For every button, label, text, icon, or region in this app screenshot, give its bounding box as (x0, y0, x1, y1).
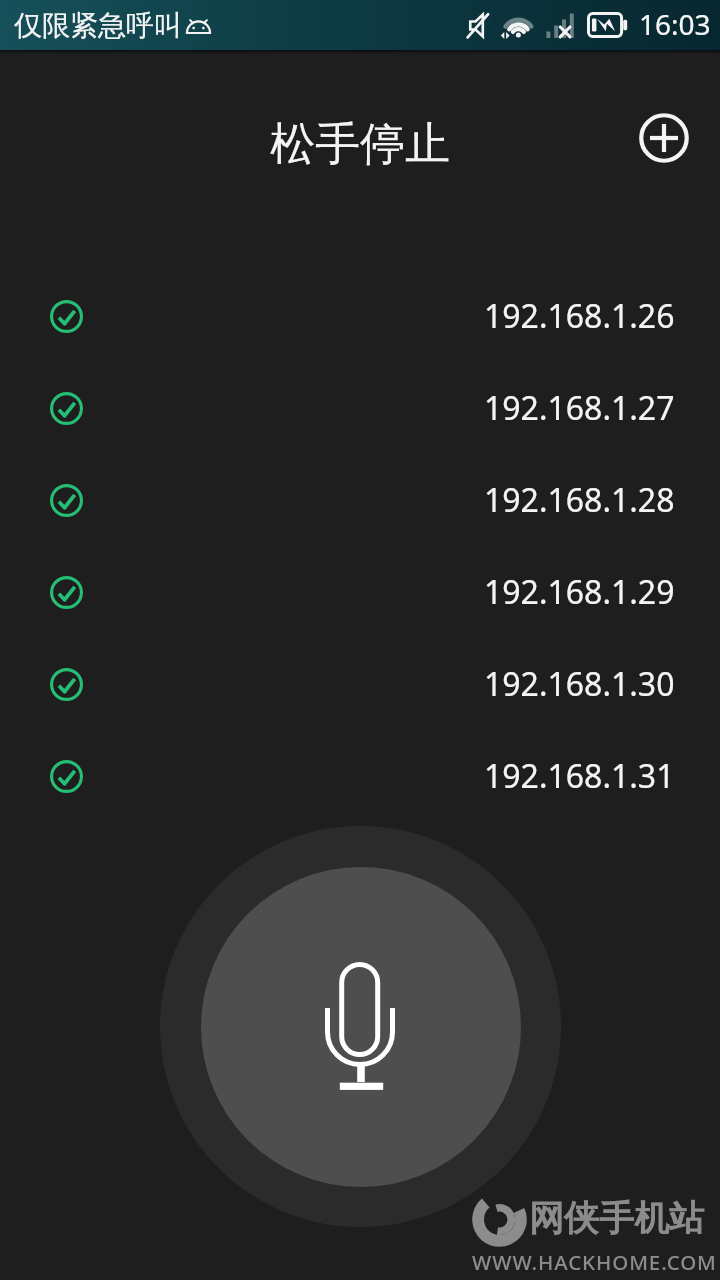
staticText: 192.168.1.30 (484, 662, 675, 706)
staticText: WWW.HACKHOME.COM (472, 1248, 717, 1276)
button[interactable]: Add (637, 111, 691, 165)
button[interactable]: 192.168.1.27 (0, 362, 720, 454)
button[interactable]: 192.168.1.31 (0, 730, 720, 822)
button[interactable]: 192.168.1.26 (0, 270, 720, 362)
staticText: 192.168.1.27 (484, 386, 675, 430)
staticText: 192.168.1.31 (484, 754, 675, 798)
staticText: 192.168.1.28 (484, 478, 675, 522)
button[interactable]: Microphone (160, 826, 561, 1227)
staticText: 192.168.1.29 (484, 570, 675, 614)
staticText: 松手停止 (270, 116, 450, 172)
button[interactable]: 192.168.1.29 (0, 546, 720, 638)
staticText: 192.168.1.26 (484, 294, 675, 338)
button[interactable]: 192.168.1.28 (0, 454, 720, 546)
staticText: 16:03 (639, 5, 711, 43)
staticText: 仅限紧急呼叫 (14, 8, 182, 43)
button[interactable]: 192.168.1.30 (0, 638, 720, 730)
staticText: 网侠手机站 (529, 1196, 704, 1240)
